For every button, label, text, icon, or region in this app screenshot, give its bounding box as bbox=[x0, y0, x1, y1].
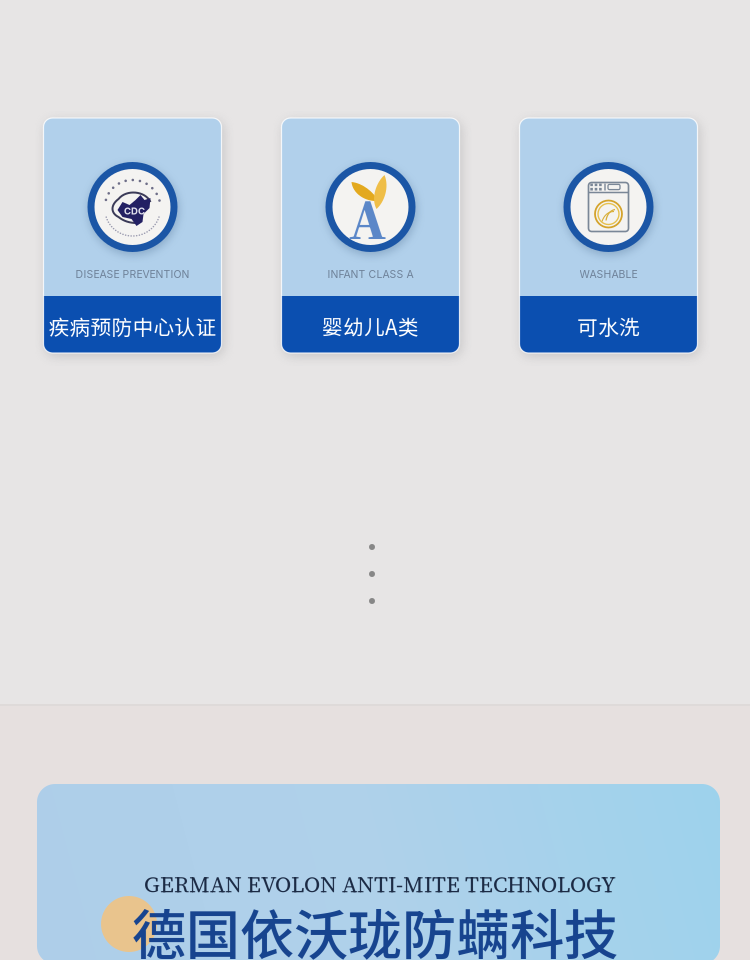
staticText: INFANT CLASS A bbox=[327, 268, 413, 281]
staticText: CDC bbox=[124, 205, 145, 217]
button[interactable]: CDC bbox=[43, 118, 221, 353]
staticText: 可水洗 bbox=[577, 311, 640, 341]
staticText: WASHABLE bbox=[579, 268, 637, 281]
staticText: 德国依沃珑防螨科技 bbox=[132, 892, 618, 960]
staticText: DISEASE PREVENTION bbox=[75, 268, 189, 281]
button[interactable]: WASHABLE bbox=[519, 118, 697, 353]
staticText: A bbox=[349, 179, 386, 259]
staticText: 疾病预防中心认证 bbox=[48, 311, 216, 341]
button[interactable]: A bbox=[281, 118, 459, 353]
staticText: GERMAN EVOLON ANTI-MITE TECHNOLOGY bbox=[144, 869, 616, 900]
staticText: 婴幼儿A类 bbox=[322, 311, 419, 341]
